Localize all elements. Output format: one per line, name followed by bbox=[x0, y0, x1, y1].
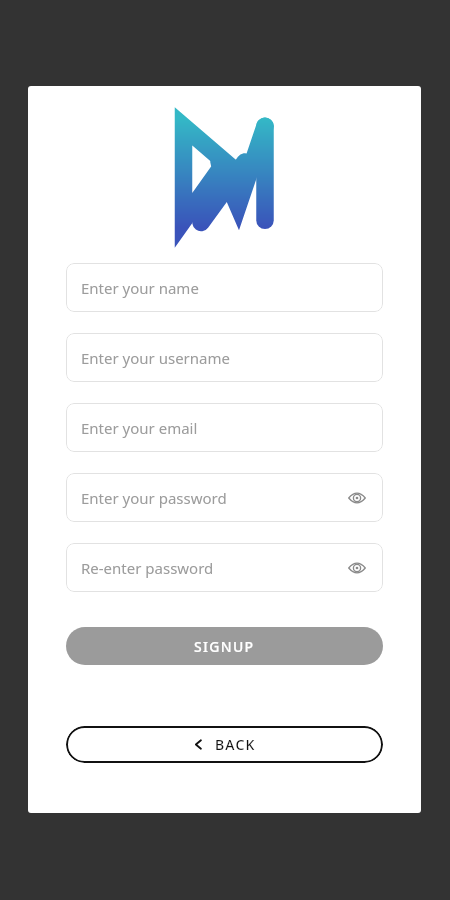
button[interactable]: Enter your username bbox=[66, 333, 383, 382]
staticText: Enter your password bbox=[81, 488, 346, 508]
staticText: Re-enter password bbox=[81, 558, 346, 578]
button[interactable]: Enter your email bbox=[66, 403, 383, 452]
button[interactable]: Show password bbox=[346, 557, 368, 579]
staticText: SIGNUP bbox=[194, 637, 255, 656]
button[interactable]: Show password bbox=[346, 487, 368, 509]
staticText: Enter your email bbox=[81, 418, 368, 438]
staticText: Enter your username bbox=[81, 348, 368, 368]
button[interactable]: BACK bbox=[66, 726, 383, 763]
button[interactable]: Re-enter password bbox=[66, 543, 383, 592]
button[interactable]: Enter your name bbox=[66, 263, 383, 312]
button[interactable]: SIGNUP bbox=[66, 627, 383, 665]
button[interactable]: Enter your password bbox=[66, 473, 383, 522]
staticText: Enter your name bbox=[81, 278, 368, 298]
staticText: BACK bbox=[215, 735, 256, 754]
